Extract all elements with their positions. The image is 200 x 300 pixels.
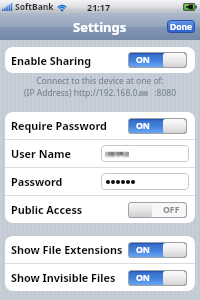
staticText: Password <box>11 174 63 189</box>
button[interactable]: Done <box>167 20 195 33</box>
staticText: User Name <box>11 146 71 161</box>
button[interactable]: On <box>129 53 186 67</box>
staticText: Show File Extensions <box>11 242 123 257</box>
staticText: ON <box>136 54 150 66</box>
button[interactable]: On <box>129 119 186 133</box>
staticText: (IP Address) http://192.168.0. :8080 <box>0 87 200 99</box>
staticText: Public Access <box>11 202 83 217</box>
staticText: Require Password <box>11 118 107 133</box>
staticText: SoftBank <box>15 1 54 13</box>
staticText: ON <box>136 272 150 284</box>
staticText: 21:17 <box>87 1 111 13</box>
button[interactable]: On <box>129 243 186 257</box>
button[interactable]: On <box>129 271 186 285</box>
staticText: Enable Sharing <box>11 53 92 68</box>
staticText: Settings <box>73 18 127 36</box>
button[interactable]: Show Invisible Files <box>5 264 195 291</box>
button[interactable]: Public Access <box>5 196 195 223</box>
staticText: OFF <box>163 204 180 216</box>
staticText: Connect to this device at one of: <box>0 75 200 87</box>
staticText: ON <box>136 120 150 132</box>
staticText: ON <box>136 244 150 256</box>
button[interactable]: Password <box>5 168 195 195</box>
staticText: Show Invisible Files <box>11 270 116 285</box>
button[interactable]: Show File Extensions <box>5 236 195 263</box>
staticText: Done <box>170 21 193 33</box>
button[interactable]: User Name <box>5 140 195 167</box>
button[interactable]: Enable Sharing <box>5 47 195 73</box>
button[interactable]: Off <box>129 203 186 217</box>
button[interactable]: Require Password <box>5 112 195 139</box>
